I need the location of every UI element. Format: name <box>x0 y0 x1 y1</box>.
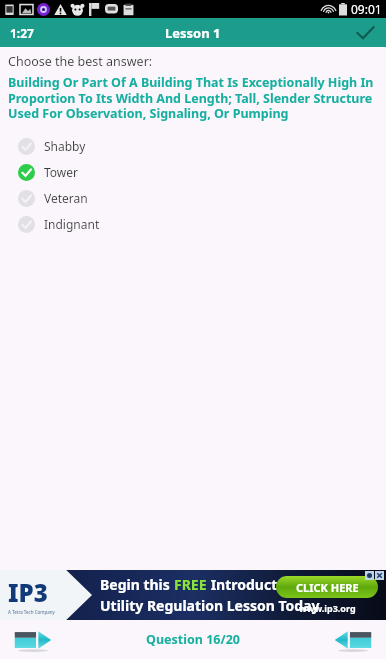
staticText: Building Or Part Of A Building That Is E… <box>8 74 378 121</box>
staticText: Veteran <box>44 190 88 206</box>
staticText: Indignant <box>44 216 100 232</box>
staticText: Lesson 1 <box>165 24 221 42</box>
button[interactable]: Tower <box>8 159 378 185</box>
staticText: Tower <box>44 164 79 180</box>
button[interactable]: Indignant <box>8 211 378 237</box>
button[interactable]: CLICK HERE <box>276 576 378 598</box>
staticText: A Tetra Tech Company <box>8 609 55 615</box>
button[interactable]: Next question <box>330 625 376 655</box>
staticText: Begin this <box>100 575 174 594</box>
staticText: Utility Regulation Lesson Today <box>100 596 320 615</box>
button[interactable]: Veteran <box>8 185 378 211</box>
staticText: 09:01 <box>351 1 382 17</box>
staticText: Shabby <box>44 138 86 154</box>
button[interactable]: Submit answer <box>344 18 386 47</box>
staticText: www.ip3.org <box>299 602 356 614</box>
staticText: Choose the best answer: <box>8 53 153 70</box>
staticText: IP3 <box>8 576 48 609</box>
staticText: CLICK HERE <box>296 580 359 595</box>
button[interactable]: Previous question <box>10 625 56 655</box>
staticText: Introductory <box>207 575 301 594</box>
staticText: 1:27 <box>10 25 34 41</box>
staticText: FREE <box>174 575 207 594</box>
button[interactable]: Advertisement: IP3 utility regulation le… <box>0 570 386 620</box>
button[interactable]: Shabby <box>8 133 378 159</box>
staticText: Question 16/20 <box>146 631 240 648</box>
